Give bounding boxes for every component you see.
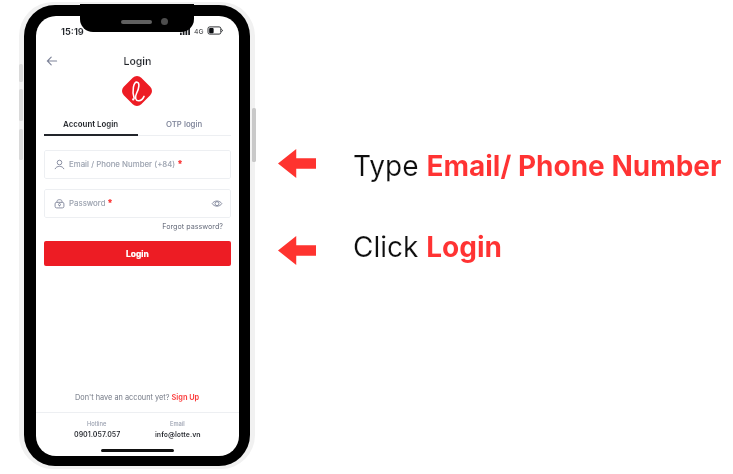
staticText: Password [69, 198, 106, 208]
button[interactable]: Back [38, 47, 66, 75]
staticText: Login [126, 249, 149, 259]
staticText: Email / Phone Number (+84) [69, 159, 176, 169]
button[interactable]: Don't have an account yet? Sign Up [75, 393, 200, 402]
staticText: 0901.057.057 [74, 430, 121, 438]
staticText: Email [170, 420, 185, 427]
staticText: Account Login [63, 119, 119, 128]
staticText: Hotline [87, 420, 107, 427]
staticText: 4G [194, 27, 204, 35]
button[interactable]: Forgot password? [44, 222, 223, 231]
button[interactable]: Click Login [353, 230, 502, 264]
staticText: info@lotte.vn [155, 430, 201, 438]
button[interactable]: Hotline [57, 420, 137, 438]
button[interactable]: Login [44, 241, 231, 266]
button[interactable]: Show password [212, 200, 222, 207]
staticText: Login [36, 55, 239, 68]
staticText: 15:19 [61, 26, 84, 37]
staticText: OTP login [166, 119, 203, 128]
button[interactable]: OTP login [137, 112, 231, 134]
button[interactable]: Account Login [44, 112, 137, 134]
button[interactable]: Type Email/ Phone Number [353, 149, 722, 183]
button[interactable]: Password [44, 189, 231, 218]
button[interactable]: Email [137, 420, 218, 438]
button[interactable]: Email / Phone Number (+84) [44, 150, 231, 179]
